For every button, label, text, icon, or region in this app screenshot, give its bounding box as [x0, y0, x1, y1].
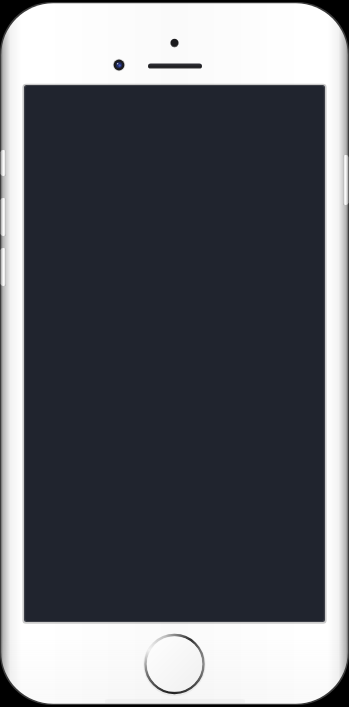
other: Phone screen	[0, 0, 349, 707]
